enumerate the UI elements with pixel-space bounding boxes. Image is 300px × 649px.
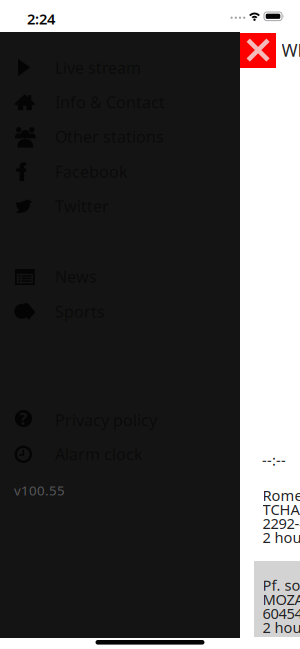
staticText: ? [19, 408, 27, 429]
button[interactable]: Other stations [0, 119, 240, 153]
staticText: v100.55 [14, 481, 65, 499]
staticText: WFCC [281, 38, 300, 61]
staticText: 2292-44943-2 [262, 514, 300, 533]
staticText: 2 hours ago [262, 618, 300, 637]
staticText: Other stations [55, 126, 164, 147]
staticText: 2:24 [27, 9, 55, 28]
staticText: Facebook [55, 161, 128, 182]
staticText: TCHAIKOVSKY [262, 500, 300, 519]
button[interactable]: Pf. sonata [254, 561, 300, 637]
staticText: 60454-2-RG [262, 603, 300, 623]
staticText: --:-- [262, 450, 286, 470]
staticText: News [55, 266, 97, 287]
staticText: MOZART [262, 590, 300, 609]
staticText: Sports [55, 301, 105, 322]
staticText: Romeo and Juliet [262, 486, 300, 505]
staticText: 2 hours ago [262, 528, 300, 547]
button[interactable]: Close menu [240, 33, 276, 68]
staticText: Pf. sonata [262, 575, 300, 595]
